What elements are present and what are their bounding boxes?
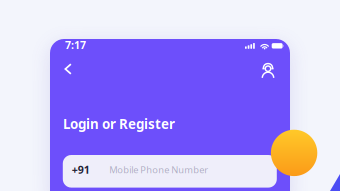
button[interactable]: +91: [63, 155, 277, 188]
staticText: Login or Register: [63, 115, 175, 133]
button[interactable]: Back: [57, 58, 79, 80]
staticText: +91: [72, 163, 90, 177]
button[interactable]: Contact support: [256, 59, 280, 81]
staticText: Mobile Phone Number: [109, 163, 208, 176]
staticText: 7:17: [65, 38, 86, 52]
